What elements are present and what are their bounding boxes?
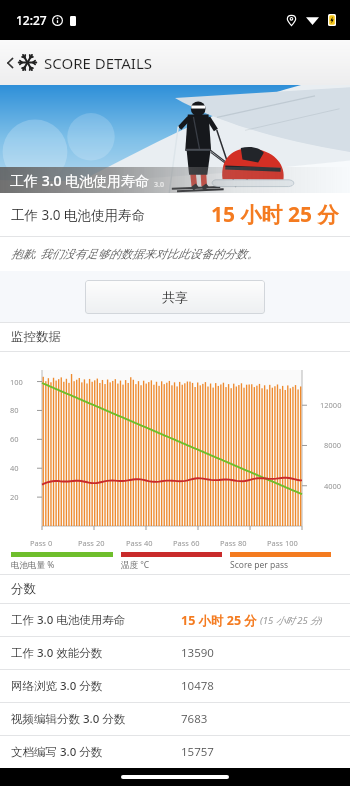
button[interactable]: 文档编写 3.0 分数 bbox=[0, 736, 350, 768]
staticText: 12000 bbox=[320, 400, 342, 410]
staticText: 抱歉, 我们没有足够的数据来对比此设备的分数。 bbox=[11, 246, 259, 262]
staticText: 10478 bbox=[181, 678, 214, 694]
button[interactable]: 共享 bbox=[85, 280, 265, 314]
staticText: (15 小时 25 分) bbox=[260, 614, 323, 627]
button[interactable]: 工作 3.0 电池使用寿命 bbox=[0, 85, 350, 193]
staticText: 工作 3.0 电池使用寿命 bbox=[11, 612, 126, 628]
staticText: 工作 3.0 电池使用寿命 bbox=[11, 206, 146, 224]
staticText: 工作 3.0 效能分数 bbox=[11, 645, 103, 661]
staticText: 13590 bbox=[181, 645, 214, 661]
staticText: Pass 60 bbox=[173, 538, 200, 548]
staticText: Pass 40 bbox=[126, 538, 153, 548]
staticText: SCORE DETAILS bbox=[44, 53, 153, 73]
staticText: 温度 °C bbox=[121, 559, 150, 571]
button[interactable]: 网络浏览 3.0 分数 bbox=[0, 670, 350, 702]
other: Location bbox=[286, 15, 297, 26]
button[interactable]: Home bbox=[121, 775, 229, 779]
button[interactable]: Back bbox=[0, 40, 350, 85]
staticText: 视频编辑分数 3.0 分数 bbox=[11, 711, 126, 727]
button[interactable]: 视频编辑分数 3.0 分数 bbox=[0, 703, 350, 735]
staticText: 电池电量 % bbox=[11, 559, 55, 571]
staticText: Pass 0 bbox=[30, 538, 53, 548]
other: Battery charging bbox=[328, 14, 336, 26]
staticText: 60 bbox=[10, 434, 19, 444]
staticText: 4000 bbox=[324, 481, 342, 491]
staticText: 工作 3.0 电池使用寿命 bbox=[10, 171, 150, 190]
staticText: 20 bbox=[10, 492, 19, 502]
staticText: Pass 80 bbox=[220, 538, 247, 548]
other: Back bbox=[4, 57, 16, 69]
staticText: 80 bbox=[10, 405, 19, 415]
staticText: 100 bbox=[10, 377, 23, 387]
button[interactable]: 工作 3.0 效能分数 bbox=[0, 637, 350, 669]
staticText: 3.0 bbox=[154, 180, 164, 190]
staticText: 文档编写 3.0 分数 bbox=[11, 744, 103, 760]
staticText: 40 bbox=[10, 463, 19, 473]
button[interactable]: 工作 3.0 电池使用寿命 bbox=[0, 604, 350, 636]
staticText: 7683 bbox=[181, 711, 208, 727]
button[interactable]: 工作 3.0 电池使用寿命 bbox=[0, 193, 350, 236]
staticText: 15757 bbox=[181, 744, 214, 760]
staticText: 12:27 bbox=[16, 12, 47, 28]
staticText: Score per pass bbox=[230, 559, 289, 571]
staticText: Pass 20 bbox=[78, 538, 105, 548]
staticText: 15 小时 25 分 bbox=[181, 612, 257, 629]
staticText: 监控数据 bbox=[11, 329, 61, 345]
staticText: 15 小时 25 分 bbox=[211, 200, 339, 229]
other: Wi-Fi bbox=[306, 15, 319, 25]
staticText: 共享 bbox=[162, 289, 188, 305]
staticText: 网络浏览 3.0 分数 bbox=[11, 678, 103, 694]
staticText: Pass 100 bbox=[267, 538, 298, 548]
staticText: 分数 bbox=[11, 581, 36, 597]
staticText: 8000 bbox=[324, 440, 342, 450]
